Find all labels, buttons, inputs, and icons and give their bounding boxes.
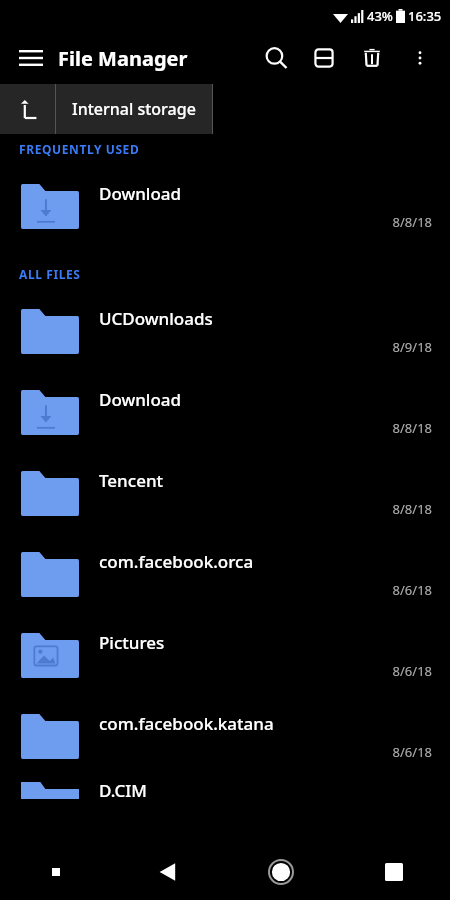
button[interactable]: Search xyxy=(252,32,300,84)
button[interactable]: Back xyxy=(112,844,224,900)
button[interactable]: Menu xyxy=(14,41,48,75)
staticText: File Manager xyxy=(58,45,188,72)
staticText: 43% xyxy=(367,7,393,25)
staticText: Tencent xyxy=(99,469,164,492)
button[interactable]: Home xyxy=(224,844,337,900)
button[interactable]: Up one level xyxy=(0,84,55,134)
button[interactable]: Download xyxy=(0,370,450,451)
staticText: Internal storage xyxy=(72,98,196,120)
button[interactable]: Internal storage xyxy=(56,84,212,134)
button[interactable]: com.facebook.katana xyxy=(0,694,450,775)
button[interactable]: Recent apps xyxy=(337,844,450,900)
staticText: Download xyxy=(99,182,182,205)
staticText: 8/6/18 xyxy=(392,743,432,761)
button[interactable]: UCDownloads xyxy=(0,289,450,370)
staticText: UCDownloads xyxy=(99,307,213,330)
button[interactable]: Download xyxy=(0,164,450,245)
staticText: 16:35 xyxy=(408,7,442,25)
staticText: 8/8/18 xyxy=(392,500,432,518)
staticText: 8/8/18 xyxy=(392,213,432,231)
button[interactable]: Tencent xyxy=(0,451,450,532)
staticText: com.facebook.orca xyxy=(99,550,254,573)
button[interactable]: Split view xyxy=(300,32,348,84)
staticText: FREQUENTLY USED xyxy=(19,141,140,157)
staticText: Download xyxy=(99,388,182,411)
staticText: 8/6/18 xyxy=(392,581,432,599)
staticText: com.facebook.katana xyxy=(99,712,274,735)
staticText: Pictures xyxy=(99,631,165,654)
staticText: 8/8/18 xyxy=(392,419,432,437)
button[interactable]: Delete xyxy=(348,32,396,84)
button[interactable]: D.CIM xyxy=(0,775,450,799)
staticText: ALL FILES xyxy=(19,266,81,282)
button[interactable]: Keyboard xyxy=(0,844,112,900)
staticText: D.CIM xyxy=(99,779,147,799)
button[interactable]: com.facebook.orca xyxy=(0,532,450,613)
staticText: 8/6/18 xyxy=(392,662,432,680)
staticText: 8/9/18 xyxy=(392,338,432,356)
button[interactable]: More options xyxy=(396,32,444,84)
button[interactable]: Pictures xyxy=(0,613,450,694)
